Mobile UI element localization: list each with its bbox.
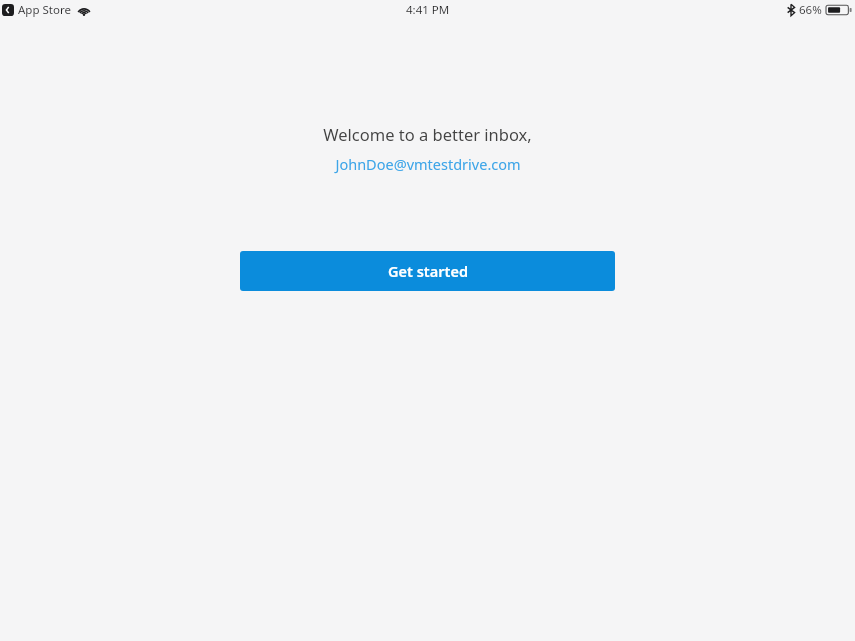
button[interactable]: Back to App Store [2,4,14,16]
staticText: 4:41 PM [406,2,450,18]
button[interactable]: Get started [240,251,615,291]
staticText: JohnDoe@vmtestdrive.com [335,154,521,174]
other: Wi-Fi [77,5,91,16]
staticText: App Store [18,2,71,18]
staticText: 66% [799,2,822,18]
staticText: Welcome to a better inbox, [323,123,532,145]
staticText: Get started [388,261,468,281]
other: Bluetooth [787,4,795,16]
button[interactable]: JohnDoe@vmtestdrive.com [331,153,525,175]
other: Battery 66 percent [826,4,852,16]
